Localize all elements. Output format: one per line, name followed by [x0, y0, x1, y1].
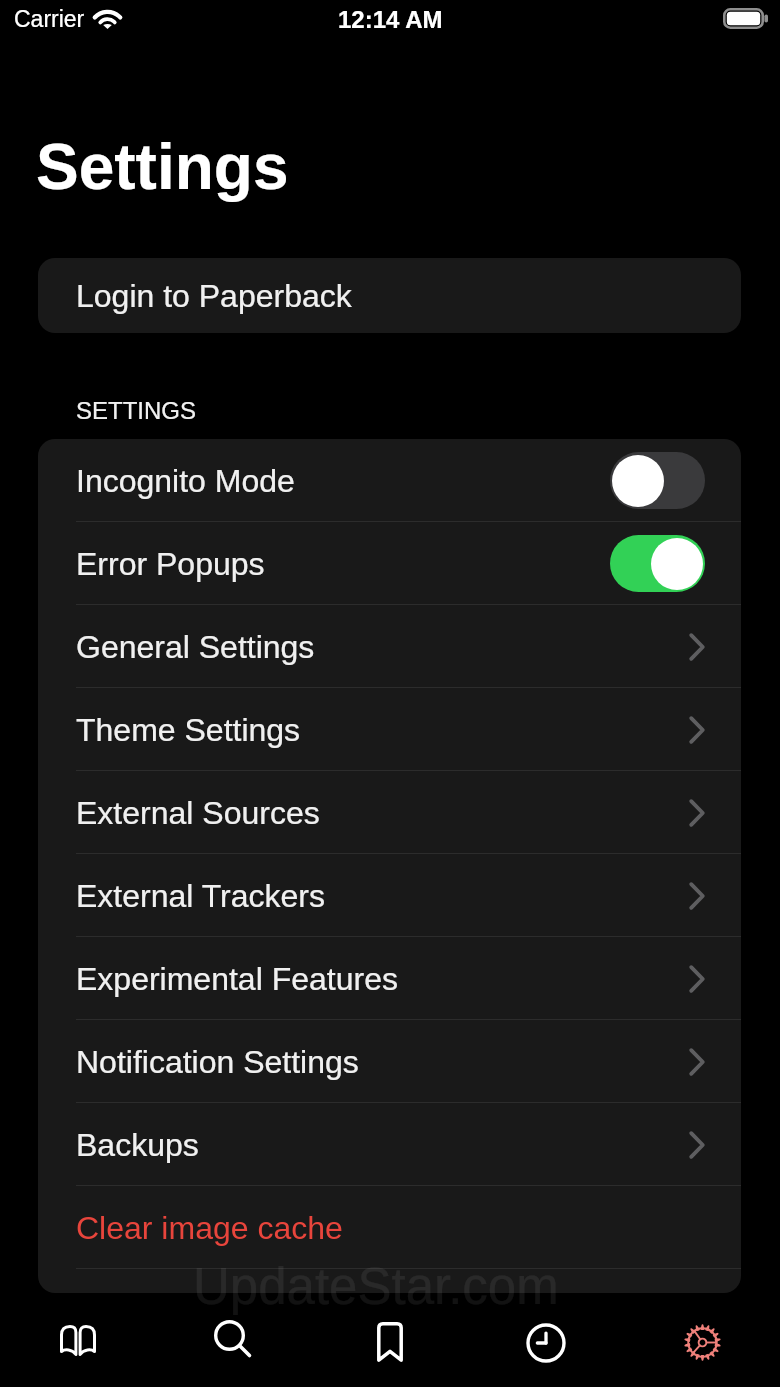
button[interactable]: Off — [610, 452, 705, 509]
staticText: Notification Settings — [76, 1044, 359, 1080]
staticText: Theme Settings — [76, 712, 301, 748]
staticText: External Sources — [76, 795, 320, 831]
button[interactable]: Library — [0, 1293, 156, 1387]
button[interactable]: History — [468, 1293, 624, 1387]
button[interactable]: Experimental Features — [38, 937, 741, 1020]
staticText: Error Popups — [76, 546, 265, 582]
staticText: Settings — [36, 131, 289, 203]
staticText: 12:14 AM — [338, 6, 443, 33]
staticText: SETTINGS — [76, 397, 197, 424]
button[interactable]: Clear database — [38, 1269, 741, 1293]
staticText: Backups — [76, 1127, 199, 1163]
button[interactable]: On — [610, 535, 705, 592]
staticText: Carrier — [14, 6, 85, 32]
staticText: Experimental Features — [76, 961, 398, 997]
button[interactable]: Search — [156, 1293, 312, 1387]
staticText: Incognito Mode — [76, 463, 295, 499]
staticText: External Trackers — [76, 878, 325, 914]
button[interactable]: Notification Settings — [38, 1020, 741, 1103]
button[interactable]: Error Popups — [38, 522, 741, 605]
button[interactable]: Backups — [38, 1103, 741, 1186]
button[interactable]: External Trackers — [38, 854, 741, 937]
button[interactable]: Login to Paperback — [38, 258, 741, 333]
staticText: Login to Paperback — [76, 278, 352, 314]
staticText: General Settings — [76, 629, 315, 665]
button[interactable]: Incognito Mode — [38, 439, 741, 522]
button[interactable]: Bookmarks — [312, 1293, 468, 1387]
button[interactable]: General Settings — [38, 605, 741, 688]
button[interactable]: Settings — [624, 1293, 780, 1387]
button[interactable]: Clear image cache — [38, 1186, 741, 1269]
button[interactable]: Theme Settings — [38, 688, 741, 771]
staticText: Clear image cache — [76, 1210, 343, 1246]
button[interactable]: External Sources — [38, 771, 741, 854]
staticText: UpdateStar.com — [193, 1258, 559, 1315]
